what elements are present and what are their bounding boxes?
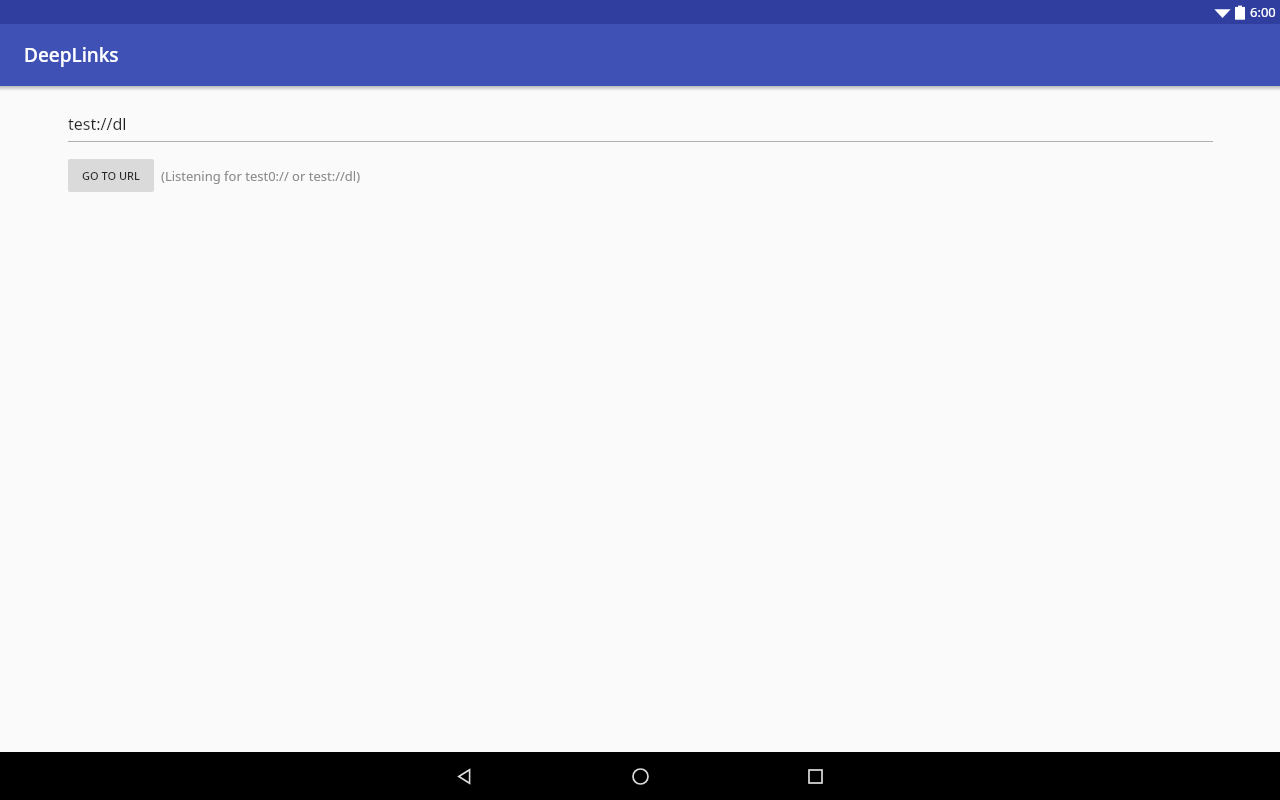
button[interactable]: Recent apps bbox=[791, 752, 839, 800]
staticText: DeepLinks bbox=[24, 42, 119, 68]
button[interactable]: GO TO URL bbox=[68, 159, 154, 192]
staticText: GO TO URL bbox=[82, 168, 140, 183]
button[interactable]: Home bbox=[616, 752, 664, 800]
button[interactable]: Back bbox=[440, 752, 488, 800]
button[interactable]: test://dl bbox=[68, 113, 1213, 142]
staticText: test://dl bbox=[68, 113, 127, 135]
staticText: 6:00 bbox=[1250, 3, 1276, 21]
staticText: (Listening for test0:// or test://dl) bbox=[161, 167, 361, 185]
